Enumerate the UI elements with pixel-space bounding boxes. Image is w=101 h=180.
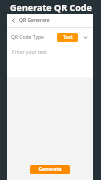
button[interactable]: Back	[7, 14, 93, 27]
staticText: Generate	[38, 166, 62, 173]
staticText: Enter your text	[12, 49, 47, 56]
staticText: Text	[63, 34, 73, 41]
other: Back	[10, 17, 17, 24]
staticText: QR Code Type	[11, 34, 44, 41]
button[interactable]: Generate	[30, 165, 70, 174]
staticText: Generate QR Code	[10, 1, 92, 13]
staticText: QR Generate	[19, 17, 50, 24]
button[interactable]: Text	[57, 33, 78, 42]
button[interactable]: Enter your text	[7, 46, 93, 77]
button[interactable]: Select QR code type	[82, 34, 89, 41]
